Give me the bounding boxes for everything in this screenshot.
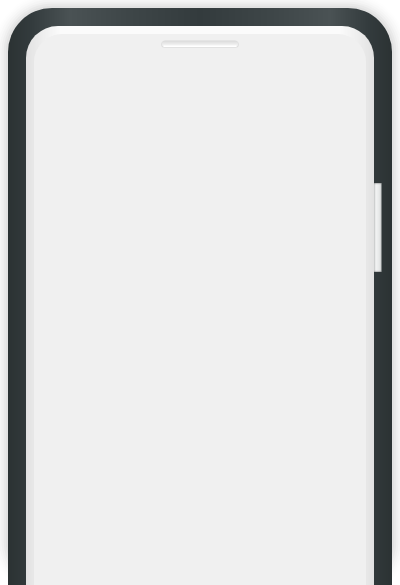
button[interactable]: Power button (370, 183, 386, 272)
